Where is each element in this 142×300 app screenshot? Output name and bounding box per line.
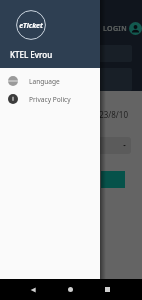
staticText: Privacy Policy (29, 95, 71, 104)
button[interactable]: Recent apps (95, 279, 119, 300)
button[interactable]: Privacy Policy (0, 90, 100, 108)
button[interactable] (101, 171, 125, 188)
staticText: eTicket (16, 21, 46, 31)
staticText: 2023/8/10 (90, 109, 128, 120)
button[interactable]: Home (58, 279, 82, 300)
staticText: LOGIN (103, 24, 128, 34)
staticText: KTEL Evrou (10, 49, 53, 60)
button[interactable]: Language (0, 72, 100, 90)
button[interactable]: LOGIN (103, 19, 142, 38)
button[interactable]: Back (21, 279, 45, 300)
staticText: Language (29, 77, 60, 86)
button[interactable] (84, 137, 131, 154)
